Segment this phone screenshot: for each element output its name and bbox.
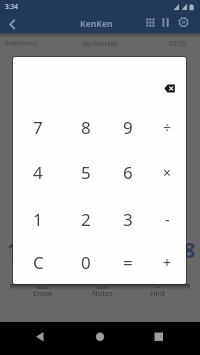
button[interactable] bbox=[149, 327, 169, 347]
button[interactable]: ÷ bbox=[148, 110, 186, 144]
staticText: 5 bbox=[81, 161, 91, 184]
button[interactable]: 3 bbox=[109, 202, 147, 236]
button[interactable]: Erase bbox=[23, 288, 63, 298]
staticText: Erase bbox=[33, 288, 53, 298]
button[interactable]: 4 bbox=[19, 155, 57, 189]
button[interactable] bbox=[4, 16, 20, 32]
button[interactable] bbox=[144, 16, 157, 29]
staticText: C bbox=[33, 251, 44, 274]
button[interactable]: 0 bbox=[67, 245, 105, 279]
staticText: 6 bbox=[123, 161, 133, 184]
staticText: 8x8(Expert) bbox=[5, 39, 37, 47]
button[interactable] bbox=[90, 327, 110, 347]
staticText: 8 bbox=[81, 116, 91, 139]
button[interactable]: - bbox=[148, 202, 186, 236]
button[interactable]: 1 bbox=[19, 202, 57, 236]
staticText: 4 bbox=[33, 161, 43, 184]
button[interactable]: Hint bbox=[137, 288, 177, 298]
staticText: 00:10 bbox=[169, 39, 186, 48]
staticText: × bbox=[163, 163, 172, 182]
staticText: 3 bbox=[123, 208, 133, 231]
button[interactable]: C bbox=[19, 245, 57, 279]
staticText: Notes bbox=[92, 288, 113, 298]
staticText: 9 bbox=[123, 116, 133, 139]
staticText: 8 bbox=[183, 234, 196, 264]
staticText: Hint bbox=[150, 288, 165, 298]
staticText: ÷ bbox=[163, 118, 172, 137]
button[interactable]: × bbox=[148, 155, 186, 189]
button[interactable] bbox=[176, 15, 191, 30]
staticText: = bbox=[123, 251, 133, 274]
button[interactable]: 7 bbox=[19, 110, 57, 144]
staticText: 0 bbox=[81, 251, 91, 274]
button[interactable]: 8 bbox=[67, 110, 105, 144]
button[interactable] bbox=[30, 327, 50, 347]
button[interactable]: 5 bbox=[67, 155, 105, 189]
staticText: 2 bbox=[81, 208, 91, 231]
button[interactable]: Notes bbox=[82, 288, 122, 298]
button[interactable]: 6 bbox=[109, 155, 147, 189]
button[interactable] bbox=[159, 16, 172, 29]
staticText: KenKen bbox=[80, 18, 113, 30]
staticText: + bbox=[163, 253, 172, 272]
staticText: 7 bbox=[33, 116, 43, 139]
button[interactable]: = bbox=[109, 245, 147, 279]
staticText: 1 bbox=[33, 208, 43, 231]
staticText: No mistake bbox=[83, 39, 118, 48]
staticText: - bbox=[165, 210, 170, 229]
staticText: 3:34 bbox=[5, 2, 18, 11]
button[interactable]: 9 bbox=[109, 110, 147, 144]
staticText: 1 bbox=[7, 234, 20, 264]
button[interactable] bbox=[162, 82, 180, 96]
button[interactable]: + bbox=[148, 245, 186, 279]
button[interactable]: 2 bbox=[67, 202, 105, 236]
